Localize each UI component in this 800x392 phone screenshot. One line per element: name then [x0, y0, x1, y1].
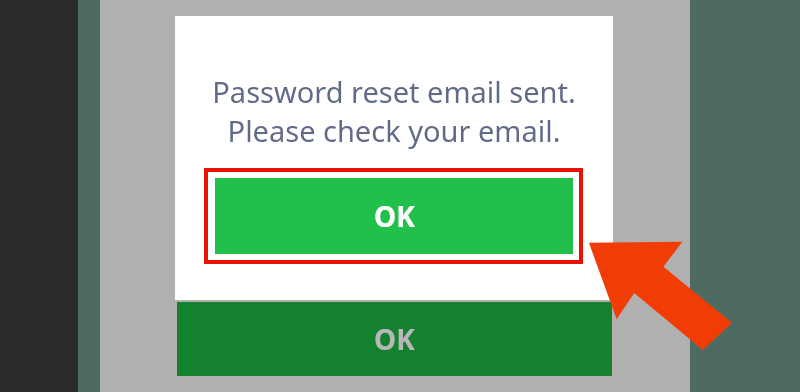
- button[interactable]: OK: [177, 302, 612, 376]
- staticText: Password reset email sent. Please check …: [175, 72, 613, 150]
- other: Tap OK: [586, 236, 732, 350]
- button[interactable]: OK: [215, 178, 573, 254]
- staticText: OK: [374, 320, 415, 358]
- staticText: OK: [374, 197, 415, 235]
